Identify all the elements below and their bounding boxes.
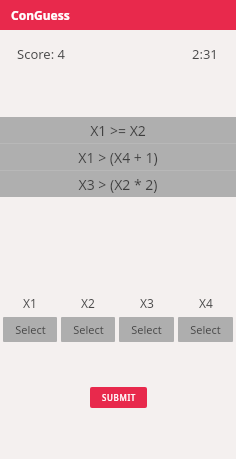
staticText: X1 >= X2 [90,121,146,140]
button[interactable]: SUBMIT [90,387,147,408]
staticText: X1 > (X4 + 1) [78,148,158,167]
button[interactable]: X3 > (X2 * 2) [0,171,236,197]
button[interactable]: Select [61,317,115,342]
staticText: Select [15,322,46,337]
button[interactable]: X1 > (X4 + 1) [0,144,236,170]
button[interactable]: Select [119,317,174,342]
staticText: ConGuess [11,7,70,23]
staticText: X2 [81,295,95,311]
staticText: Score: 4 [17,45,65,63]
staticText: X3 > (X2 * 2) [78,175,158,194]
button[interactable]: X1 >= X2 [0,117,236,143]
staticText: 2:31 [192,45,218,63]
staticText: X1 [23,295,37,311]
button[interactable]: Select [178,317,233,342]
staticText: X3 [140,295,154,311]
staticText: Select [190,322,221,337]
staticText: Select [131,322,162,337]
staticText: SUBMIT [102,392,136,403]
staticText: Select [73,322,104,337]
button[interactable]: Select [3,317,57,342]
staticText: X4 [199,295,213,311]
